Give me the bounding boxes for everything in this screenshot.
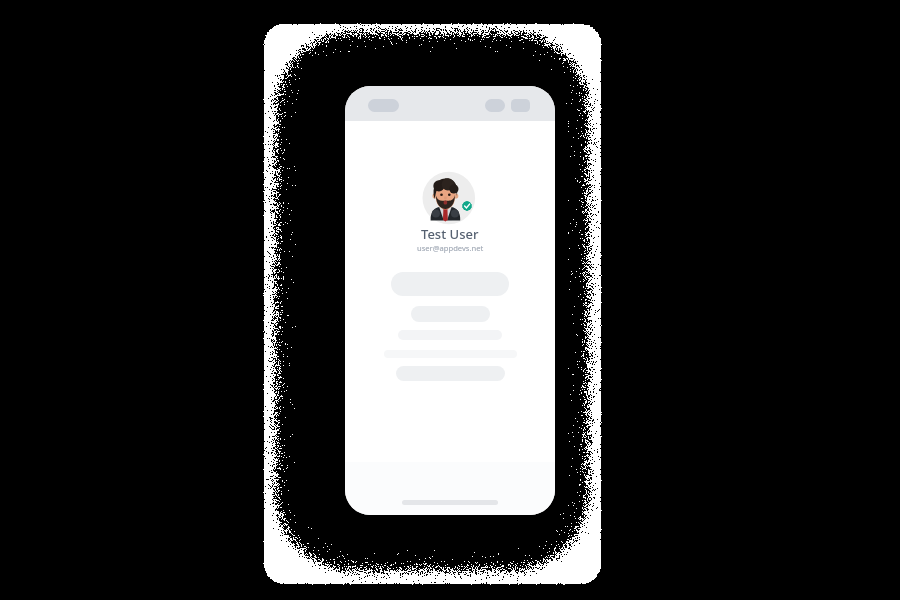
button[interactable]	[411, 306, 490, 322]
other: Clock	[368, 99, 399, 112]
button[interactable]: Profile photo	[421, 171, 479, 229]
other: Battery	[511, 99, 530, 112]
staticText: user@appdevs.net	[417, 243, 484, 253]
button[interactable]	[345, 462, 555, 515]
other: Signal	[485, 99, 505, 112]
button[interactable]	[391, 272, 509, 296]
button[interactable]: Verified account	[462, 201, 472, 211]
staticText: Test User	[421, 225, 479, 243]
